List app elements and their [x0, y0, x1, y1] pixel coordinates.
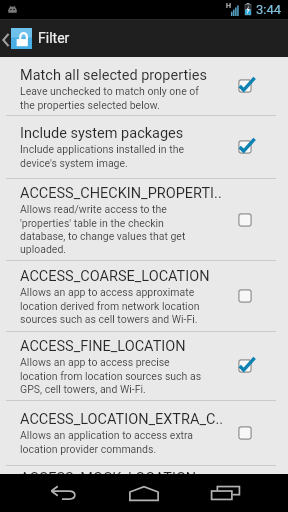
staticText: 3:44: [256, 2, 282, 17]
button[interactable]: Navigate up: [0, 19, 288, 57]
staticText: Allows an app to access approximate loca…: [20, 286, 200, 325]
button[interactable]: ACCESS_MOCK_LOCATION: [0, 466, 288, 474]
button[interactable]: ACCESS_COARSE_LOCATION: [0, 261, 288, 331]
staticText: ACCESS_COARSE_LOCATION: [20, 268, 210, 285]
staticText: Allows read/write access to the 'propert…: [20, 203, 186, 255]
button[interactable]: Home: [118, 474, 170, 512]
staticText: Include applications installed in the de…: [20, 143, 185, 169]
staticText: Leave unchecked to match only one of the…: [20, 85, 199, 111]
staticText: Filter: [38, 30, 70, 46]
staticText: ACCESS_MOCK_LOCATION: [20, 470, 197, 474]
button[interactable]: Match all selected properties: [0, 57, 288, 115]
staticText: Allows an application to access extra lo…: [20, 429, 194, 455]
staticText: ACCESS_LOCATION_EXTRA_C..: [20, 411, 224, 428]
button[interactable]: ACCESS_LOCATION_EXTRA_C..: [0, 401, 288, 465]
staticText: ACCESS_FINE_LOCATION: [20, 338, 186, 355]
button[interactable]: Recent apps: [199, 474, 251, 512]
other: Navigate up: [1, 33, 10, 47]
button[interactable]: Back: [38, 474, 90, 512]
button[interactable]: Include system packages: [0, 116, 288, 178]
staticText: Include system packages: [20, 125, 184, 142]
staticText: ACCESS_CHECKIN_PROPERTI..: [20, 185, 222, 202]
staticText: Match all selected properties: [20, 67, 207, 84]
staticText: H: [226, 2, 231, 10]
staticText: Allows an app to access precise location…: [20, 356, 202, 395]
button[interactable]: ACCESS_FINE_LOCATION: [0, 332, 288, 400]
button[interactable]: ACCESS_CHECKIN_PROPERTI..: [0, 179, 288, 260]
